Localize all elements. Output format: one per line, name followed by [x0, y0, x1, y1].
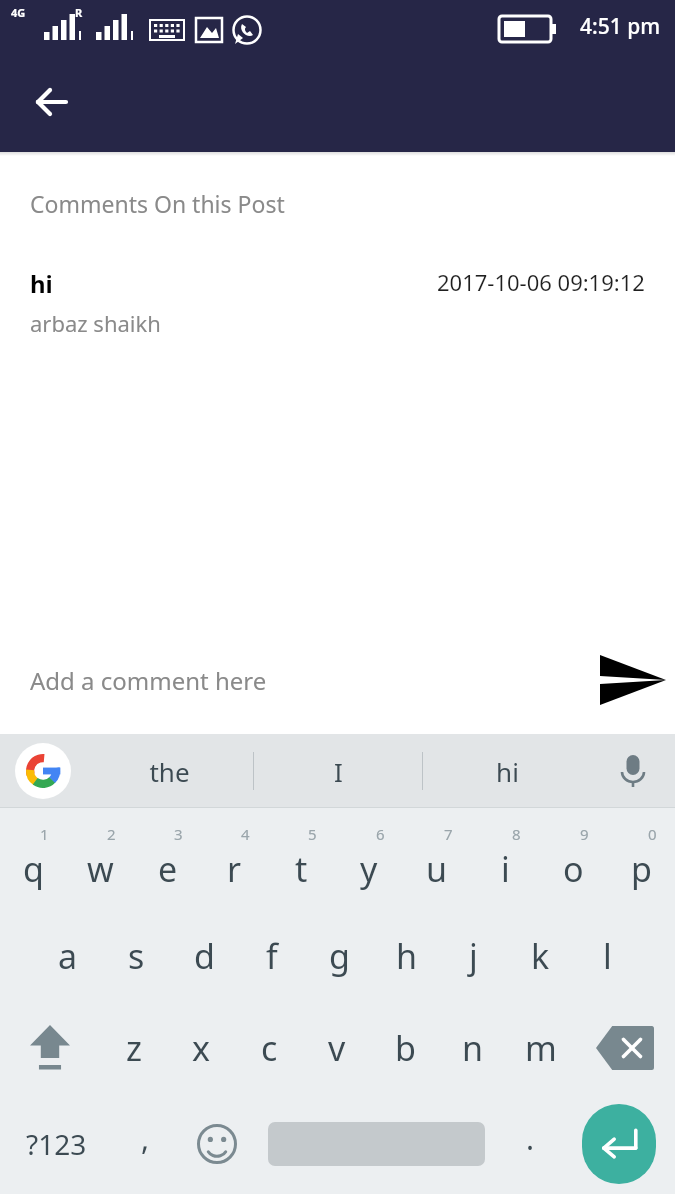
button[interactable]: , [112, 1094, 178, 1194]
button[interactable]: a [34, 910, 102, 1002]
staticText: arbaz shaikh [30, 308, 161, 338]
staticText: hi [496, 754, 519, 789]
button[interactable]: Google [15, 743, 71, 799]
button[interactable]: 4 [201, 818, 268, 910]
staticText: 3 [174, 824, 183, 844]
staticText: 8 [512, 824, 521, 844]
button[interactable]: 7 [403, 818, 471, 910]
staticText: 5 [308, 824, 317, 844]
button[interactable]: x [167, 1002, 235, 1094]
staticText: t [295, 846, 308, 892]
staticText: 4G [11, 5, 26, 20]
staticText: 0 [648, 824, 657, 844]
staticText: d [194, 933, 215, 979]
staticText: 2017-10-06 09:19:12 [437, 267, 645, 297]
staticText: j [469, 933, 478, 979]
staticText: k [531, 933, 550, 979]
staticText: . [526, 1118, 535, 1159]
button[interactable]: v [303, 1002, 371, 1094]
staticText: b [395, 1025, 416, 1071]
button[interactable]: hi [0, 267, 675, 338]
button[interactable]: 0 [607, 818, 675, 910]
button[interactable]: 6 [335, 818, 403, 910]
button[interactable]: k [507, 910, 574, 1002]
staticText: f [266, 933, 278, 979]
button[interactable]: d [170, 910, 238, 1002]
staticText: g [329, 933, 350, 979]
staticText: hi [30, 267, 53, 300]
button[interactable]: 2 [67, 818, 134, 910]
button[interactable]: . [497, 1094, 563, 1194]
staticText: 2 [107, 824, 116, 844]
staticText: r [227, 846, 242, 892]
button[interactable]: Emoji [178, 1094, 256, 1194]
button[interactable]: Back [20, 71, 82, 133]
button[interactable]: Shift [0, 1002, 100, 1094]
button[interactable]: Backspace [575, 1002, 675, 1094]
staticText: n [462, 1025, 484, 1071]
button[interactable]: b [371, 1002, 439, 1094]
staticText: u [426, 846, 448, 892]
staticText: , [141, 1118, 150, 1159]
button[interactable]: z [100, 1002, 167, 1094]
button[interactable]: g [306, 910, 373, 1002]
button[interactable]: 1 [0, 818, 67, 910]
staticText: s [128, 933, 145, 979]
staticText: w [87, 846, 114, 892]
button[interactable]: the [86, 734, 253, 808]
button[interactable]: n [439, 1002, 507, 1094]
button[interactable]: ?123 [0, 1094, 112, 1194]
staticText: ?123 [26, 1125, 87, 1163]
staticText: Comments On this Post [30, 188, 285, 219]
button[interactable]: Add a comment here [0, 632, 675, 728]
staticText: z [126, 1025, 142, 1071]
staticText: e [158, 846, 178, 892]
button[interactable]: Enter [563, 1094, 675, 1194]
button[interactable]: c [235, 1002, 303, 1094]
staticText: v [328, 1025, 346, 1071]
staticText: h [396, 933, 418, 979]
button[interactable]: s [102, 910, 170, 1002]
staticText: 4:51 pm [580, 12, 661, 41]
button[interactable]: h [373, 910, 440, 1002]
button[interactable]: I [254, 734, 422, 808]
staticText: y [360, 846, 378, 892]
staticText: x [192, 1025, 210, 1071]
staticText: the [149, 754, 190, 789]
staticText: 4 [241, 824, 250, 844]
staticText: Add a comment here [30, 664, 591, 697]
button[interactable]: j [440, 910, 507, 1002]
staticText: p [631, 846, 652, 892]
button[interactable]: Voice input [591, 734, 675, 808]
staticText: 1 [40, 824, 49, 844]
staticText: a [58, 933, 78, 979]
staticText: R [75, 5, 83, 20]
staticText: I [334, 754, 343, 789]
button[interactable]: Send [591, 638, 675, 722]
staticText: 9 [580, 824, 589, 844]
staticText: q [23, 846, 44, 892]
staticText: o [563, 846, 584, 892]
button[interactable]: hi [423, 734, 591, 808]
staticText: m [525, 1025, 557, 1071]
button[interactable]: m [507, 1002, 575, 1094]
button[interactable]: 3 [134, 818, 201, 910]
button[interactable]: 5 [268, 818, 335, 910]
button[interactable]: f [238, 910, 306, 1002]
staticText: 6 [376, 824, 385, 844]
staticText: c [261, 1025, 278, 1071]
staticText: l [603, 933, 612, 979]
button[interactable]: 9 [539, 818, 607, 910]
button[interactable]: l [574, 910, 641, 1002]
button[interactable]: 8 [471, 818, 539, 910]
staticText: i [501, 846, 510, 892]
staticText: 7 [444, 824, 453, 844]
